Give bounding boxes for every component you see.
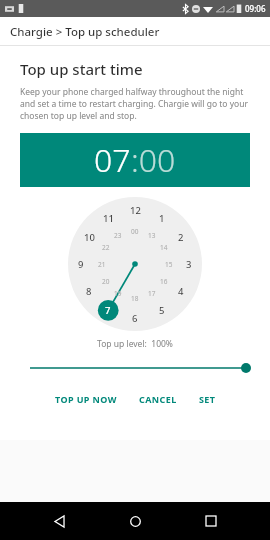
staticText: 1: [159, 212, 165, 225]
staticText: 20: [102, 277, 110, 286]
button[interactable]: 1: [68, 197, 202, 331]
button[interactable]: TOP UP NOW: [51, 387, 121, 411]
staticText: 14: [160, 243, 168, 252]
staticText: SET: [199, 393, 216, 405]
staticText: 00: [131, 227, 139, 236]
button[interactable]: SET: [195, 387, 220, 411]
button[interactable]: Recent apps: [195, 505, 227, 537]
staticText: 12: [130, 204, 141, 217]
staticText: 11: [103, 212, 114, 225]
staticText: CANCEL: [139, 393, 177, 405]
staticText: 8: [86, 285, 92, 298]
staticText: 3: [186, 258, 192, 271]
staticText: 22: [102, 243, 110, 252]
staticText: 4: [178, 285, 184, 298]
staticText: 15: [165, 260, 173, 269]
staticText: 16: [160, 277, 168, 286]
staticText: Chargie > Top up scheduler: [10, 24, 160, 40]
staticText: Top up start time: [20, 59, 143, 79]
staticText: 23: [114, 231, 122, 240]
button[interactable]: 07: [20, 133, 250, 187]
staticText: 09:06: [245, 3, 266, 14]
staticText: Top up level: 100%: [0, 338, 270, 350]
button[interactable]: CANCEL: [135, 387, 181, 411]
staticText: 19: [114, 289, 122, 298]
button[interactable]: [0, 360, 270, 376]
staticText: 07: [94, 138, 131, 182]
staticText: 2: [178, 231, 184, 244]
staticText: 9: [78, 258, 84, 271]
staticText: 5: [159, 304, 165, 317]
staticText: TOP UP NOW: [55, 393, 117, 405]
staticText: 17: [148, 289, 156, 298]
staticText: 6: [132, 312, 138, 325]
staticText: Keep your phone charged halfway througho…: [20, 86, 256, 122]
staticText: 21: [98, 260, 106, 269]
staticText: 18: [131, 294, 139, 303]
staticText: :00: [131, 138, 176, 182]
button[interactable]: Home: [119, 505, 151, 537]
button[interactable]: Back: [44, 505, 76, 537]
staticText: 10: [84, 231, 95, 244]
staticText: 13: [148, 231, 156, 240]
staticText: 7: [105, 304, 111, 317]
